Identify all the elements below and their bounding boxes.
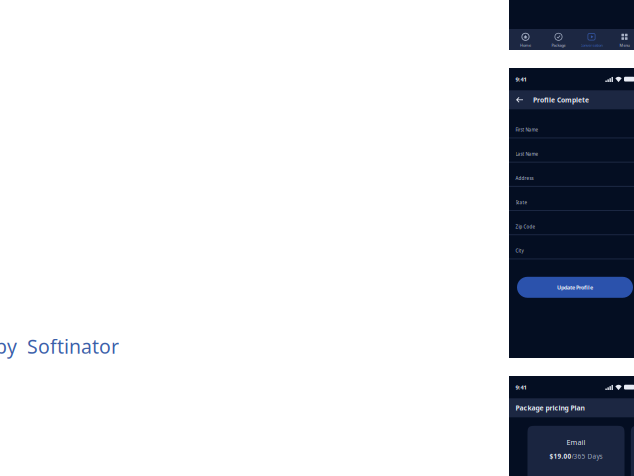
staticText: 9:41 — [515, 75, 526, 83]
staticText: City — [515, 248, 523, 254]
button[interactable]: Package — [542, 29, 575, 50]
staticText: Last Name — [515, 151, 538, 157]
staticText: Update Profile — [557, 284, 593, 291]
staticText: /365 Days — [571, 452, 602, 461]
staticText: State — [515, 199, 527, 205]
staticText: Menu — [619, 42, 629, 48]
staticText: Zip Code — [515, 224, 535, 230]
button[interactable]: Menu — [608, 29, 634, 50]
button[interactable]: Email — [631, 426, 634, 476]
staticText: Profile Complete — [533, 95, 589, 104]
staticText: Home — [520, 42, 531, 48]
staticText: by Softinator — [0, 333, 119, 359]
staticText: $19.00 — [549, 452, 571, 461]
button[interactable]: Conversation — [575, 29, 608, 50]
staticText: Address — [515, 175, 533, 181]
staticText: 9:41 — [515, 383, 526, 391]
staticText: Package — [551, 42, 565, 48]
staticText: Conversation — [580, 42, 602, 48]
button[interactable]: Email — [527, 426, 624, 476]
staticText: Package pricing Plan — [515, 403, 584, 412]
button[interactable]: Update Profile — [517, 277, 633, 298]
staticText: First Name — [515, 127, 538, 133]
staticText: Email — [566, 437, 585, 447]
button[interactable]: Profile Complete — [509, 90, 634, 109]
button[interactable]: Home — [509, 29, 542, 50]
